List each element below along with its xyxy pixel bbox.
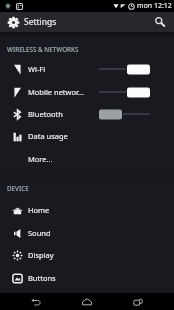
staticText: Bluetooth — [28, 109, 63, 119]
staticText: More... — [28, 154, 53, 164]
staticText: Data usage — [28, 131, 68, 141]
button[interactable] — [99, 85, 150, 99]
button[interactable]: Sound — [0, 221, 174, 244]
button[interactable]: Mobile networ… — [0, 81, 174, 103]
staticText: Settings — [24, 16, 57, 28]
button[interactable]: Back — [21, 293, 51, 310]
button[interactable]: Home — [0, 198, 174, 221]
staticText: Wi-Fi — [28, 64, 46, 74]
staticText: DEVICE — [7, 184, 29, 193]
button[interactable]: Bluetooth — [0, 103, 174, 125]
button[interactable]: Recents — [123, 293, 153, 310]
button[interactable]: Buttons — [0, 266, 174, 289]
button[interactable]: More... — [0, 148, 174, 170]
staticText: WIRELESS & NETWORKS — [7, 45, 79, 54]
button[interactable] — [99, 107, 150, 121]
staticText: Home — [28, 205, 50, 215]
staticText: Display — [28, 250, 54, 260]
staticText: Buttons — [28, 273, 56, 283]
button[interactable]: Settings — [0, 12, 174, 32]
button[interactable]: Search — [150, 12, 170, 32]
button[interactable]: Wi-Fi — [0, 58, 174, 80]
button[interactable] — [99, 62, 150, 76]
button[interactable]: Home — [72, 293, 102, 310]
staticText: Sound — [28, 228, 51, 238]
button[interactable]: Display — [0, 243, 174, 266]
button[interactable]: Data usage — [0, 125, 174, 147]
staticText: mon 12:12 — [137, 1, 172, 11]
staticText: Mobile networ… — [28, 87, 84, 97]
